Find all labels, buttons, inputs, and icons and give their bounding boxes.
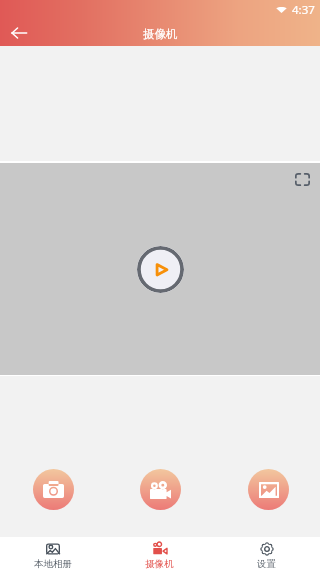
button[interactable]: 本地相册 — [0, 537, 106, 569]
staticText: 摄像机 — [143, 27, 178, 41]
staticText: 4:37 — [292, 2, 315, 18]
button[interactable]: Back — [7, 21, 31, 45]
button[interactable]: 设置 — [213, 537, 320, 569]
button[interactable]: Play — [137, 246, 184, 293]
button[interactable]: 摄像机 — [106, 537, 213, 569]
staticText: 设置 — [257, 558, 276, 569]
button[interactable]: Gallery — [248, 469, 289, 510]
button[interactable]: Fullscreen — [295, 173, 310, 186]
staticText: 摄像机 — [145, 558, 174, 569]
staticText: 本地相册 — [34, 558, 72, 569]
button[interactable]: Take photo — [33, 469, 74, 510]
button[interactable]: Record video — [140, 469, 181, 510]
